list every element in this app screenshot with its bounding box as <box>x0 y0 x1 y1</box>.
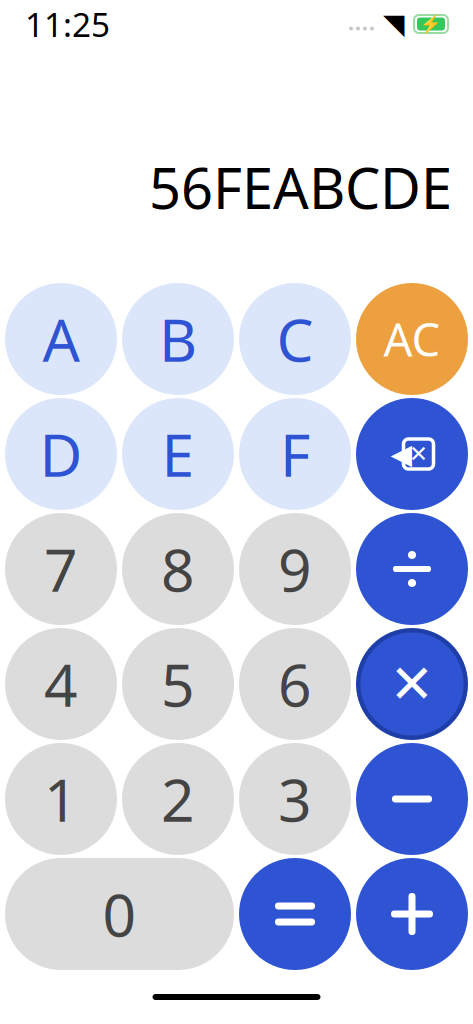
staticText: 1 <box>44 760 78 838</box>
staticText: D <box>39 415 82 493</box>
staticText: ✕ <box>409 441 428 467</box>
button[interactable]: Equals <box>239 858 351 970</box>
button[interactable]: Multiply <box>356 628 468 740</box>
staticText: 5 <box>161 645 195 723</box>
button[interactable]: F <box>239 398 351 510</box>
button[interactable]: B <box>122 283 234 395</box>
button[interactable]: D <box>5 398 117 510</box>
staticText: 4 <box>44 645 78 723</box>
button[interactable]: 9 <box>239 513 351 625</box>
staticText: 8 <box>161 530 195 608</box>
staticText: 7 <box>44 530 78 608</box>
button[interactable]: 8 <box>122 513 234 625</box>
button[interactable]: Minus <box>356 743 468 855</box>
button[interactable]: A <box>5 283 117 395</box>
button[interactable]: AC <box>356 283 468 395</box>
staticText: ✕ <box>389 654 434 714</box>
staticText: F <box>280 415 310 493</box>
button[interactable]: 2 <box>122 743 234 855</box>
button[interactable]: 6 <box>239 628 351 740</box>
staticText: AC <box>383 309 440 369</box>
button[interactable]: Delete <box>356 398 468 510</box>
staticText: C <box>276 300 313 378</box>
staticText: 11:25 <box>25 2 110 46</box>
staticText: E <box>161 415 194 493</box>
staticText: 3 <box>278 760 312 838</box>
button[interactable]: 3 <box>239 743 351 855</box>
button[interactable]: 4 <box>5 628 117 740</box>
staticText: 2 <box>161 760 195 838</box>
button[interactable]: C <box>239 283 351 395</box>
button[interactable]: 5 <box>122 628 234 740</box>
staticText: ◀ <box>390 438 412 470</box>
staticText: ◥ <box>383 8 405 40</box>
button[interactable]: E <box>122 398 234 510</box>
staticText: ⚡ <box>420 14 442 34</box>
staticText: B <box>159 300 197 378</box>
button[interactable]: 7 <box>5 513 117 625</box>
staticText: 6 <box>278 645 312 723</box>
button[interactable]: 1 <box>5 743 117 855</box>
staticText: A <box>42 300 79 378</box>
staticText: 0 <box>102 875 136 953</box>
button[interactable]: Plus <box>356 858 468 970</box>
button[interactable]: 0 <box>5 858 234 970</box>
staticText: 9 <box>278 530 312 608</box>
staticText: 56FEABCDE <box>149 150 452 224</box>
button[interactable]: Divide <box>356 513 468 625</box>
